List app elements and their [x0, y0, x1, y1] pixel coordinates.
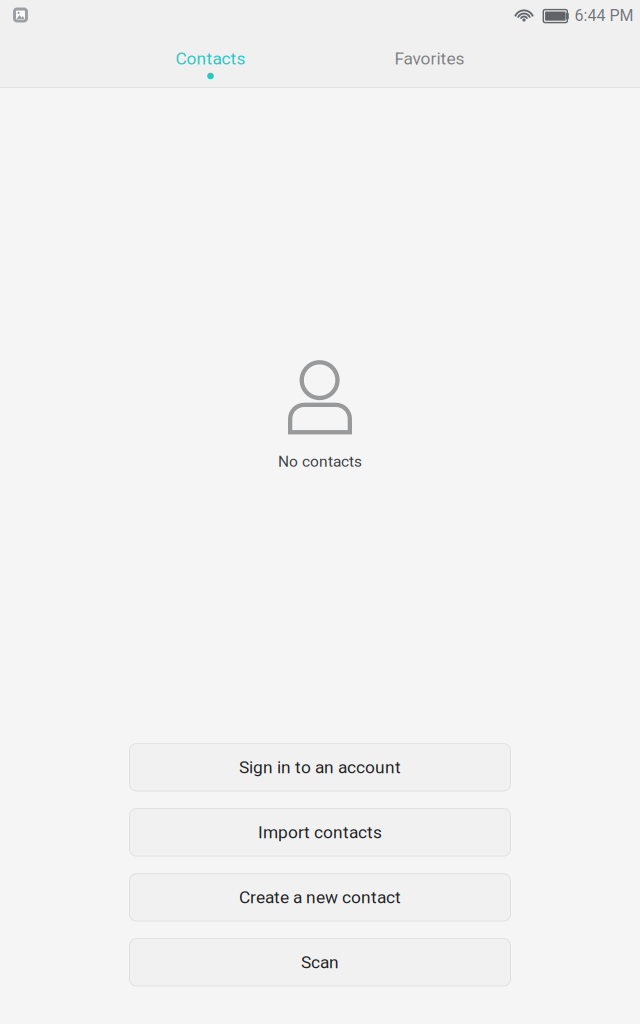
- staticText: No contacts: [278, 452, 362, 470]
- button[interactable]: Favorites: [320, 34, 539, 87]
- button[interactable]: Sign in to an account: [129, 743, 510, 791]
- button[interactable]: Import contacts: [129, 808, 510, 856]
- button[interactable]: Scan: [129, 938, 510, 986]
- staticText: Contacts: [175, 48, 245, 69]
- button[interactable]: Screenshot: [7, 2, 33, 28]
- staticText: Create a new contact: [239, 887, 401, 907]
- staticText: Sign in to an account: [239, 757, 401, 777]
- button[interactable]: Contacts: [101, 34, 320, 87]
- staticText: Import contacts: [258, 822, 382, 842]
- button[interactable]: Create a new contact: [129, 873, 510, 921]
- staticText: Favorites: [394, 48, 464, 69]
- staticText: 6:44 PM: [574, 6, 633, 25]
- staticText: Scan: [301, 952, 339, 972]
